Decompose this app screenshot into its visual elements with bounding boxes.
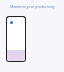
staticText: Maximize your productivity — [10, 4, 55, 9]
